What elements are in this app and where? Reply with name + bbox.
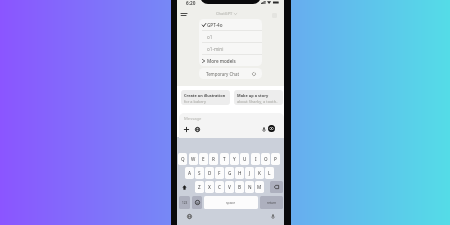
button[interactable]: O	[261, 153, 270, 165]
button[interactable]: Switch keyboard	[184, 211, 195, 222]
button[interactable]: Create an illustration	[181, 90, 230, 105]
button[interactable]: T	[220, 153, 229, 165]
staticText: J	[249, 170, 251, 176]
staticText: space	[226, 200, 236, 205]
staticText: 6:20	[186, 0, 196, 6]
staticText: GPT-4o	[207, 22, 223, 28]
button[interactable]: H	[235, 167, 244, 179]
staticText: S	[198, 170, 201, 176]
staticText: K	[258, 170, 261, 176]
staticText: N	[248, 184, 252, 190]
button[interactable]: Shift	[178, 181, 191, 193]
staticText: M	[257, 184, 262, 190]
button[interactable]: C	[215, 181, 224, 193]
button[interactable]: Attach	[181, 124, 191, 134]
button[interactable]: M	[255, 181, 264, 193]
staticText: W	[191, 156, 196, 162]
staticText: C	[218, 184, 221, 190]
staticText: X	[208, 184, 211, 190]
button[interactable]: V	[225, 181, 234, 193]
button[interactable]: return	[260, 196, 283, 209]
button[interactable]: A	[185, 167, 194, 179]
button[interactable]: W	[189, 153, 198, 165]
staticText: More models	[207, 58, 236, 64]
staticText: o1-mini	[207, 46, 224, 52]
staticText: about Sharky, a tooth-	[237, 99, 278, 104]
button[interactable]: Q	[178, 153, 187, 165]
button[interactable]: G	[225, 167, 234, 179]
staticText: Y	[233, 156, 236, 162]
staticText: o1	[207, 34, 213, 40]
button[interactable]: space	[204, 196, 258, 209]
button[interactable]: Backspace	[270, 181, 283, 193]
button[interactable]: Dictate	[267, 211, 278, 222]
button[interactable]: New chat	[267, 8, 281, 22]
staticText: D	[208, 170, 212, 176]
button[interactable]: Z	[195, 181, 204, 193]
button[interactable]: 123	[179, 196, 190, 209]
staticText: T	[223, 156, 226, 162]
button[interactable]: Temporary Chat	[199, 68, 262, 79]
staticText: O	[264, 156, 268, 162]
button[interactable]: B	[235, 181, 244, 193]
button[interactable]: Voice mode	[268, 125, 275, 132]
button[interactable]: Make up a story	[234, 90, 283, 105]
staticText: Q	[181, 156, 185, 162]
staticText: F	[218, 170, 221, 176]
staticText: Make up a story	[237, 93, 269, 98]
staticText: U	[243, 156, 247, 162]
button[interactable]: K	[255, 167, 264, 179]
button[interactable]: More models	[199, 55, 262, 66]
button[interactable]: X	[205, 181, 214, 193]
button[interactable]: S	[195, 167, 204, 179]
staticText: Z	[198, 184, 201, 190]
button[interactable]: ChatGPT	[216, 11, 237, 16]
button[interactable]: Menu	[177, 7, 191, 21]
staticText: A	[188, 170, 192, 176]
button[interactable]: P	[271, 153, 280, 165]
button[interactable]: GPT-4o	[199, 19, 262, 31]
button[interactable]: Y	[230, 153, 239, 165]
staticText: return	[267, 201, 277, 205]
button[interactable]: F	[215, 167, 224, 179]
staticText: I	[255, 156, 257, 162]
button[interactable]: N	[245, 181, 254, 193]
staticText: P	[274, 156, 277, 162]
button[interactable]: D	[205, 167, 214, 179]
button[interactable]: o1-mini	[199, 43, 262, 55]
staticText: Create an illustration	[184, 93, 226, 98]
staticText: H	[238, 170, 242, 176]
button[interactable]: E	[199, 153, 208, 165]
button[interactable]: J	[245, 167, 254, 179]
button[interactable]: U	[240, 153, 249, 165]
button[interactable]: R	[209, 153, 218, 165]
staticText: ChatGPT	[216, 11, 233, 16]
button[interactable]: o1	[199, 31, 262, 43]
staticText: E	[202, 156, 205, 162]
staticText: for a bakery	[184, 99, 206, 104]
staticText: L	[268, 170, 271, 176]
button[interactable]: Microphone	[259, 124, 269, 134]
staticText: 123	[182, 201, 188, 205]
staticText: G	[228, 170, 232, 176]
staticText: Temporary Chat	[206, 71, 239, 77]
staticText: Message	[184, 116, 202, 122]
button[interactable]: I	[251, 153, 260, 165]
staticText: B	[238, 184, 242, 190]
button[interactable]: Emoji	[192, 196, 202, 209]
staticText: V	[228, 184, 231, 190]
staticText: R	[212, 156, 215, 162]
button[interactable]: L	[265, 167, 274, 179]
button[interactable]: Browse	[192, 124, 202, 134]
